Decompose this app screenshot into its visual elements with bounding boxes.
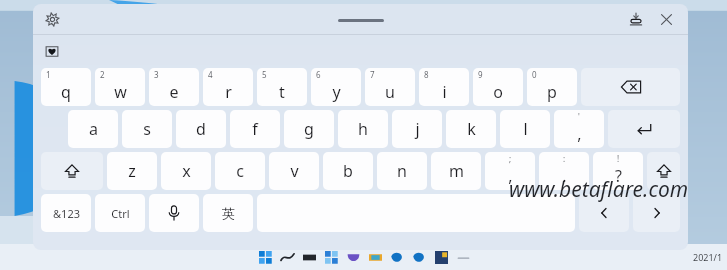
staticText: z — [128, 160, 136, 182]
staticText: 2 — [100, 69, 105, 80]
button[interactable]: t — [257, 68, 307, 106]
staticText: 8 — [424, 69, 429, 80]
button[interactable]: k — [446, 110, 496, 148]
button[interactable]: u — [365, 68, 415, 106]
button[interactable]: l — [500, 110, 550, 148]
button[interactable]: Taskbar item 7 — [387, 246, 407, 268]
button[interactable]: Taskbar item 9 — [431, 246, 451, 268]
button[interactable]: z — [107, 152, 157, 190]
button[interactable]: Taskbar item 6 — [365, 246, 385, 268]
staticText: ? — [615, 165, 622, 187]
button[interactable]: m — [431, 152, 481, 190]
button[interactable]: o — [473, 68, 523, 106]
staticText: q — [61, 81, 71, 103]
button[interactable]: f — [230, 110, 280, 148]
staticText: r — [225, 81, 232, 103]
button[interactable]: Taskbar item 3 — [299, 246, 319, 268]
button[interactable]: Ctrl — [95, 194, 145, 232]
button[interactable]: x — [161, 152, 211, 190]
staticText: x — [182, 160, 191, 182]
button[interactable]: h — [338, 110, 388, 148]
staticText: e — [169, 81, 179, 103]
button[interactable]: Taskbar item 8 — [409, 246, 429, 268]
staticText: b — [343, 160, 353, 182]
staticText: 4 — [208, 69, 213, 80]
staticText: 3 — [154, 69, 159, 80]
button[interactable]: s — [122, 110, 172, 148]
staticText: o — [493, 81, 503, 103]
button[interactable]: Emoji and clipboard — [41, 40, 63, 62]
button[interactable]: Close — [654, 7, 678, 31]
staticText: l — [523, 118, 528, 140]
staticText: , — [508, 165, 513, 187]
staticText: ; — [509, 153, 512, 164]
button[interactable]: w — [95, 68, 145, 106]
button[interactable]: Previous — [579, 194, 629, 232]
staticText: 2021/1 — [693, 251, 723, 263]
staticText: w — [114, 81, 127, 103]
button[interactable]: j — [392, 110, 442, 148]
staticText: www.betaflare.com — [509, 175, 689, 204]
staticText: t — [279, 81, 285, 103]
staticText: &123 — [53, 206, 80, 221]
button[interactable]: Dock keyboard — [624, 7, 648, 31]
staticText: 9 — [478, 69, 483, 80]
staticText: f — [252, 118, 258, 140]
button[interactable]: Space — [257, 194, 575, 232]
button[interactable]: Taskbar item 10 — [453, 246, 473, 268]
button[interactable]: Input language — [203, 194, 253, 232]
button[interactable]: p — [527, 68, 577, 106]
staticText: j — [415, 118, 420, 140]
button[interactable]: Next — [633, 194, 680, 232]
button[interactable]: r — [203, 68, 253, 106]
button[interactable]: period — [539, 152, 589, 190]
staticText: k — [467, 118, 476, 140]
button[interactable]: Settings — [41, 8, 63, 30]
button[interactable]: g — [284, 110, 334, 148]
button[interactable]: a — [68, 110, 118, 148]
button[interactable]: Enter — [608, 110, 680, 148]
button[interactable]: semicolon — [554, 110, 604, 148]
button[interactable]: c — [215, 152, 265, 190]
staticText: Ctrl — [111, 206, 130, 221]
button[interactable]: n — [377, 152, 427, 190]
staticText: , — [577, 123, 582, 145]
button[interactable]: question — [593, 152, 643, 190]
staticText: 0 — [532, 69, 537, 80]
button[interactable]: b — [323, 152, 373, 190]
button[interactable] — [338, 19, 384, 22]
button[interactable]: Numbers and symbols — [41, 194, 91, 232]
staticText: 5 — [262, 69, 267, 80]
staticText: 7 — [370, 69, 375, 80]
staticText: s — [143, 118, 151, 140]
staticText: u — [385, 81, 395, 103]
button[interactable]: q — [41, 68, 91, 106]
staticText: v — [290, 160, 299, 182]
staticText: d — [196, 118, 206, 140]
button[interactable]: comma — [485, 152, 535, 190]
staticText: 英 — [222, 205, 235, 221]
button[interactable]: y — [311, 68, 361, 106]
button[interactable]: Voice typing — [149, 194, 199, 232]
staticText: ' — [578, 111, 580, 122]
button[interactable]: Taskbar item 1 — [255, 246, 275, 268]
staticText: 1 — [46, 69, 51, 80]
button[interactable]: v — [269, 152, 319, 190]
staticText: h — [358, 118, 368, 140]
staticText: a — [89, 118, 98, 140]
button[interactable]: Taskbar item 5 — [343, 246, 363, 268]
button[interactable]: e — [149, 68, 199, 106]
staticText: ! — [617, 153, 620, 164]
button[interactable]: Backspace — [581, 68, 680, 106]
staticText: : — [563, 153, 566, 164]
button[interactable]: Taskbar item 2 — [277, 246, 297, 268]
button[interactable]: Shift — [41, 152, 103, 190]
button[interactable]: d — [176, 110, 226, 148]
staticText: m — [449, 160, 464, 182]
button[interactable]: Taskbar item 4 — [321, 246, 341, 268]
staticText: n — [397, 160, 407, 182]
staticText: i — [442, 81, 447, 103]
staticText: g — [304, 118, 314, 140]
button[interactable]: i — [419, 68, 469, 106]
button[interactable]: Shift right — [647, 152, 680, 190]
